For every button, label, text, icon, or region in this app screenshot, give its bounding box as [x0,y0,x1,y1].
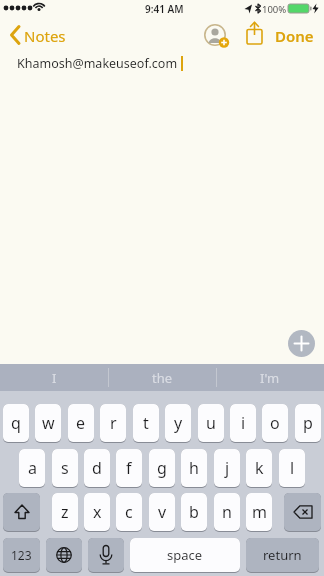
button[interactable]: n [214,493,240,532]
staticText: o [270,412,280,434]
button[interactable]: d [84,449,110,488]
staticText: return [263,546,302,564]
staticText: k [255,457,264,479]
button[interactable]: k [246,449,272,488]
button[interactable]: I [0,364,108,391]
button[interactable]: the [108,364,216,391]
staticText: 123 [11,547,32,563]
button[interactable]: g [149,449,175,488]
button[interactable]: w [35,404,61,443]
staticText: f [126,457,132,479]
staticText: a [28,457,37,479]
staticText: v [158,501,167,523]
button[interactable]: s [52,449,78,488]
button[interactable] [46,538,82,573]
button[interactable] [284,493,321,532]
staticText: z [61,501,69,523]
staticText: e [76,412,86,434]
button[interactable]: b [181,493,207,532]
button[interactable]: p [295,404,321,443]
staticText: 100% [262,3,287,16]
staticText: d [92,457,102,479]
staticText: the [152,369,173,387]
staticText: space [167,546,203,564]
staticText: g [157,457,167,479]
staticText: I'm [260,369,280,387]
staticText: q [11,412,21,434]
button[interactable]: c [116,493,142,532]
staticText: c [125,501,133,523]
button[interactable]: I'm [216,364,324,391]
button[interactable]: q [3,404,29,443]
button[interactable]: a [19,449,45,488]
staticText: b [189,501,199,523]
staticText: Khamosh@makeuseof.com [17,55,178,72]
button[interactable]: r [100,404,126,443]
button[interactable] [243,20,267,48]
staticText: r [110,412,117,434]
button[interactable]: f [116,449,142,488]
button[interactable]: h [181,449,207,488]
staticText: x [93,501,102,523]
button[interactable]: Notes [6,22,70,48]
button[interactable]: u [198,404,224,443]
button[interactable]: z [52,493,78,532]
button[interactable]: i [230,404,256,443]
button[interactable]: space [130,538,240,573]
staticText: t [143,412,149,434]
staticText: n [222,501,232,523]
staticText: w [42,412,55,434]
staticText: y [174,412,183,434]
staticText: j [225,457,230,479]
staticText: m [252,501,267,523]
staticText: s [61,457,69,479]
button[interactable]: y [165,404,191,443]
button[interactable]: 123 [3,538,40,573]
button[interactable] [3,493,40,532]
button[interactable]: v [149,493,175,532]
staticText: I [52,369,57,387]
staticText: l [290,457,295,479]
button[interactable]: j [214,449,240,488]
staticText: p [303,412,313,434]
staticText: u [206,412,216,434]
button[interactable]: t [133,404,159,443]
button[interactable]: o [262,404,288,443]
button[interactable]: m [246,493,272,532]
button[interactable]: x [84,493,110,532]
staticText: Done [275,26,314,46]
button[interactable] [88,538,124,573]
staticText: Notes [24,26,66,46]
staticText: i [241,412,246,434]
staticText: h [189,457,199,479]
button[interactable] [288,330,315,357]
button[interactable]: e [68,404,94,443]
button[interactable]: Done [272,24,318,48]
button[interactable] [202,22,230,50]
button[interactable]: l [279,449,305,488]
button[interactable]: return [246,538,319,573]
staticText: 9:41 AM [145,2,184,16]
